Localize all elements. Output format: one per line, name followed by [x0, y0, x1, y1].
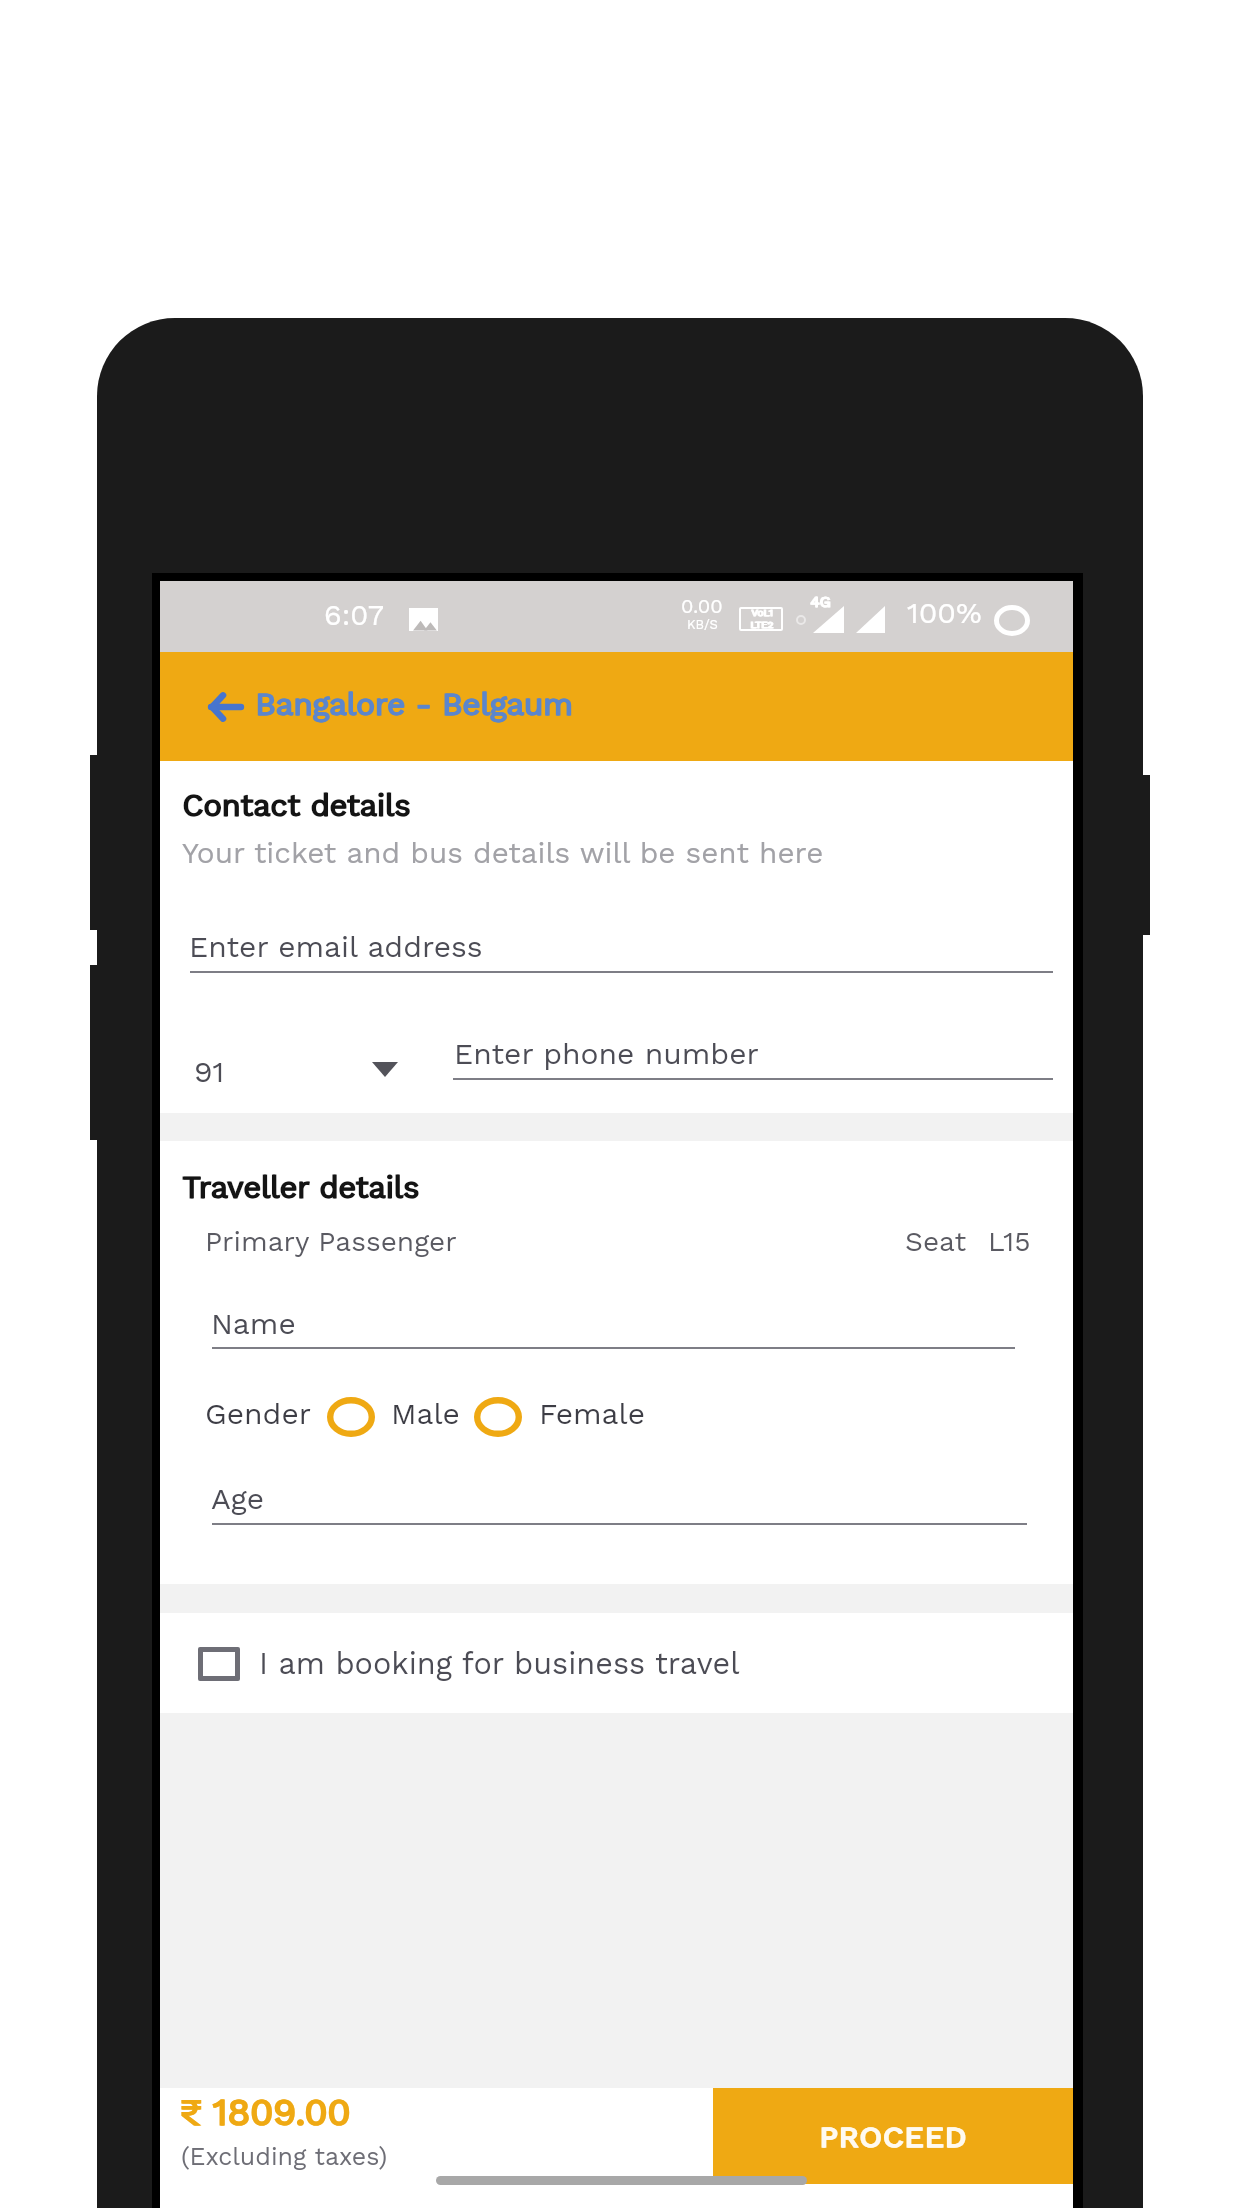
staticText: KB/S [687, 617, 718, 632]
staticText: LTE2 [751, 619, 774, 631]
button[interactable]: I am booking for business travel [160, 1613, 1073, 1713]
staticText: Seat [905, 1225, 967, 1258]
staticText: Contact details [182, 788, 411, 824]
other: Select country code [372, 1062, 398, 1077]
staticText: PROCEED [820, 2119, 968, 2154]
staticText: VoL1 [751, 607, 773, 619]
staticText: L15 [988, 1225, 1031, 1258]
staticText: Your ticket and bus details will be sent… [182, 835, 824, 870]
staticText: I am booking for business travel [259, 1646, 740, 1682]
staticText: Female [539, 1396, 646, 1431]
staticText: 6:07 [324, 598, 384, 632]
staticText: Gender [205, 1396, 311, 1431]
button[interactable]: Male [327, 1389, 396, 1445]
staticText: Age [211, 1481, 265, 1516]
staticText: 4G [810, 593, 831, 611]
staticText: VoL1 [752, 607, 774, 619]
other: Back [209, 694, 241, 720]
staticText: R [874, 614, 884, 630]
staticText: Bangalore - Belgaum [255, 686, 573, 722]
staticText: LTE2 [750, 619, 773, 631]
button[interactable]: Back [160, 652, 1073, 761]
staticText: Bangalore - Belgaum [256, 686, 574, 722]
staticText: 91 [194, 1054, 225, 1089]
staticText: Male [391, 1396, 460, 1431]
staticText: Traveller details [182, 1170, 419, 1206]
staticText: Name [211, 1306, 296, 1341]
staticText: Traveller details [183, 1170, 420, 1206]
staticText: Primary Passenger [205, 1225, 457, 1258]
staticText: Enter phone number [454, 1036, 759, 1071]
staticText: Enter email address [189, 929, 483, 964]
button[interactable]: PROCEED [713, 2088, 1073, 2184]
staticText: 4G [811, 593, 832, 611]
staticText: Contact details [183, 788, 412, 824]
staticText: ₹ 1809.00 [181, 2091, 352, 2134]
staticText: 100% [907, 595, 982, 630]
staticText: ₹ 1809.00 [180, 2091, 351, 2134]
button[interactable]: Female [474, 1389, 581, 1445]
button[interactable]: 91 [188, 1041, 456, 1097]
staticText: 0.00 [681, 594, 723, 617]
staticText: (Excluding taxes) [181, 2142, 388, 2171]
staticText: PROCEED [819, 2119, 967, 2154]
